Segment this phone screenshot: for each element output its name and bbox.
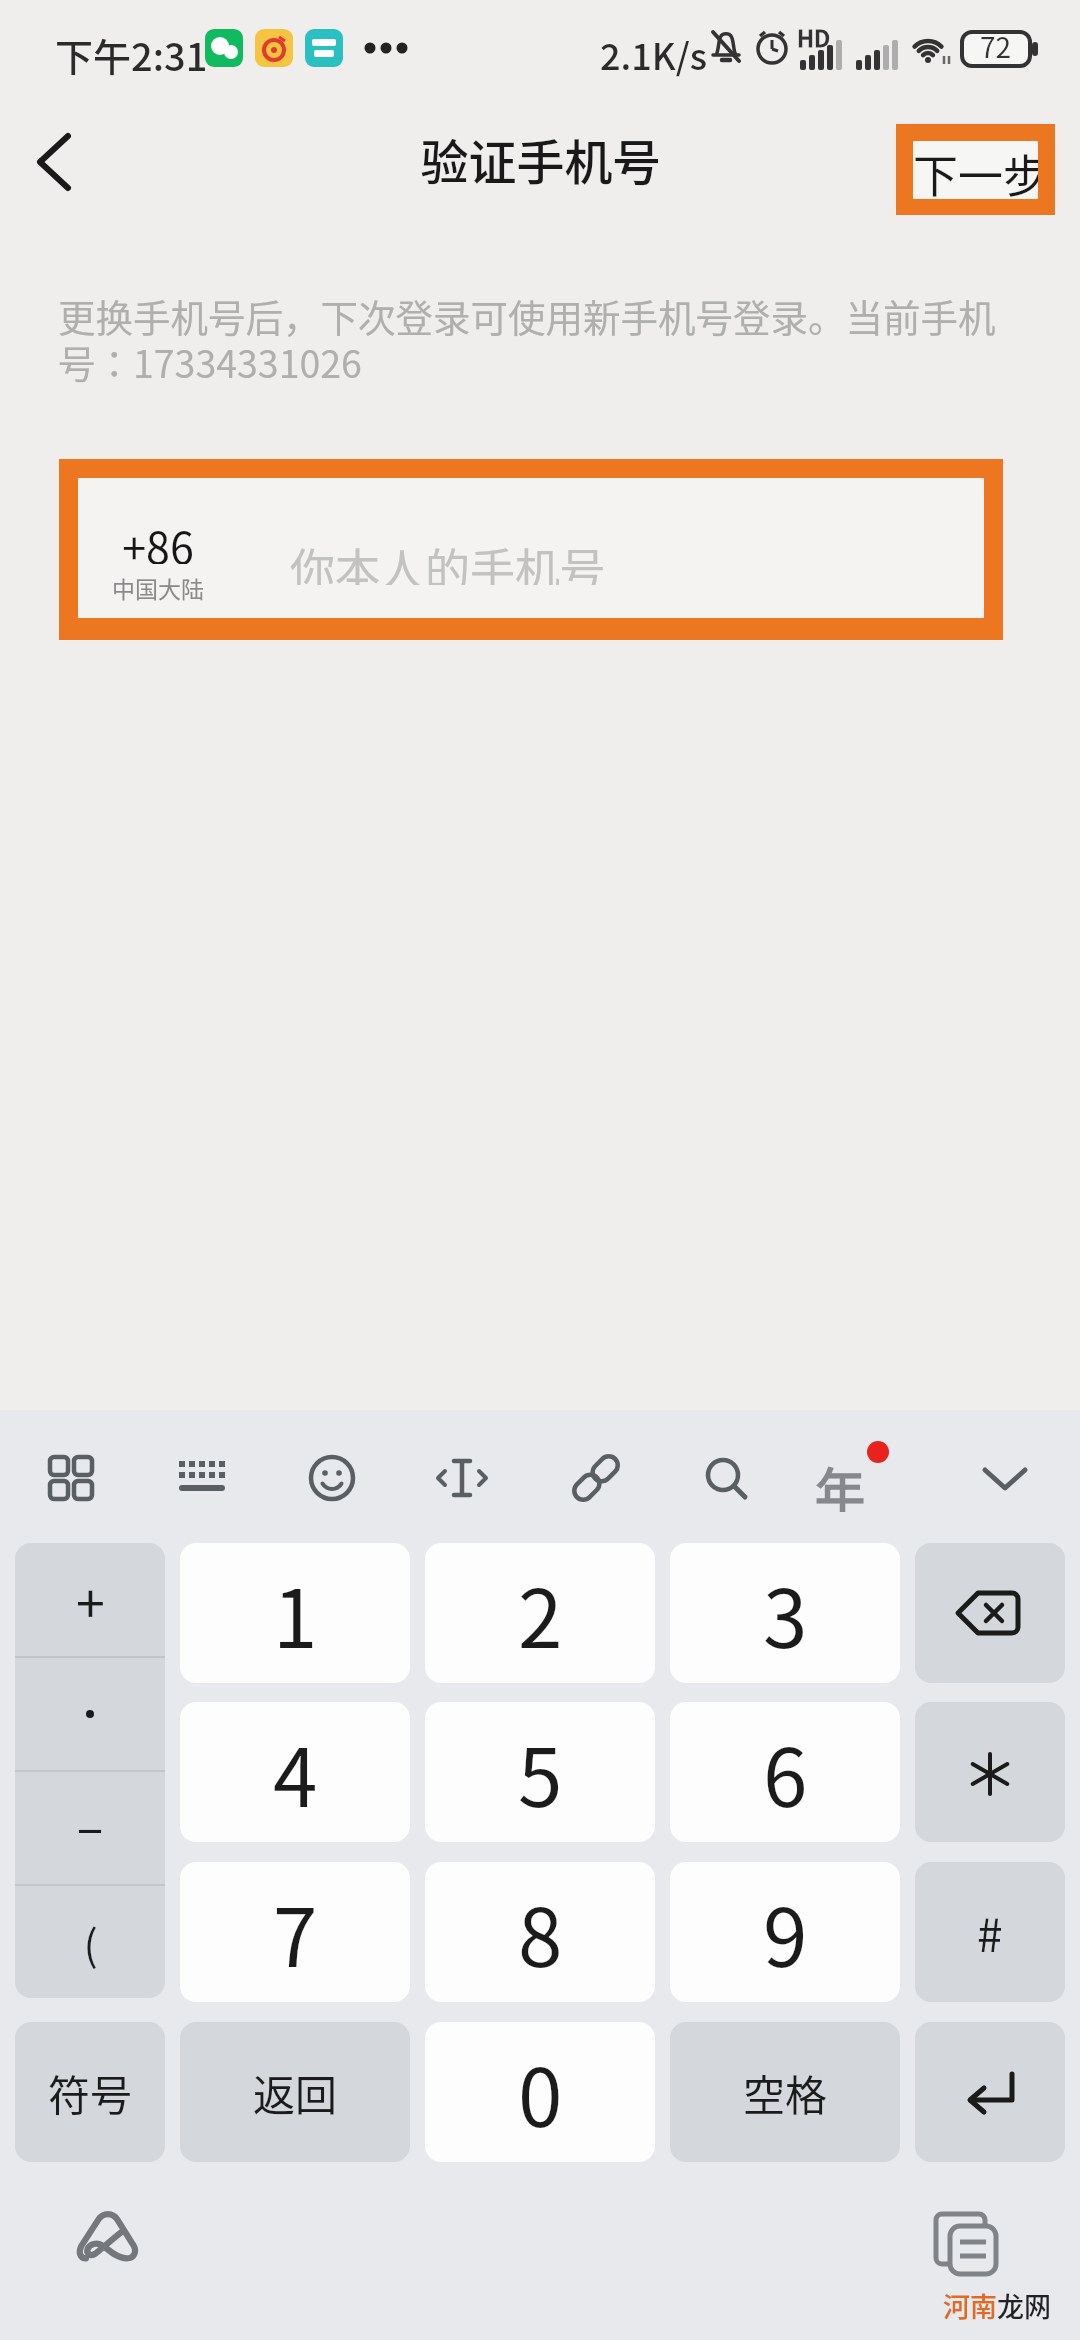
staticText: 龙网 — [997, 2286, 1051, 2325]
button[interactable]: 8 — [425, 1862, 655, 2002]
button[interactable] — [915, 2022, 1065, 2162]
button[interactable] — [20, 120, 110, 210]
button[interactable]: 9 — [670, 1862, 900, 2002]
button[interactable]: ( — [15, 1885, 165, 1998]
button[interactable]: # — [915, 1862, 1065, 2002]
staticText: 空格 — [743, 2062, 828, 2123]
button[interactable]: 4 — [180, 1702, 410, 1842]
button[interactable] — [980, 1453, 1030, 1503]
button[interactable] — [176, 1453, 226, 1503]
staticText: 7 — [273, 1874, 318, 1990]
staticText: 8 — [518, 1874, 563, 1990]
staticText: 河南 — [943, 2286, 997, 2325]
staticText: ( — [83, 1912, 98, 1973]
staticText: 你本人的手机号 — [290, 535, 606, 585]
staticText: 0 — [518, 2034, 563, 2150]
button[interactable] — [437, 1453, 487, 1503]
button[interactable] — [307, 1453, 357, 1503]
button[interactable] — [915, 1702, 1065, 1842]
staticText: # — [977, 1899, 1003, 1966]
button[interactable] — [571, 1453, 621, 1503]
staticText: 1 — [273, 1555, 318, 1671]
staticText: HD — [797, 20, 831, 53]
staticText: 下一步 — [913, 141, 1038, 199]
button[interactable]: 空格 — [670, 2022, 900, 2162]
staticText: 2 — [518, 1555, 563, 1671]
button[interactable]: 2 — [425, 1543, 655, 1683]
staticText: 更换手机号后，下次登录可使用新手机号登录。当前手机 号：17334331026 — [58, 288, 996, 389]
staticText: − — [77, 1795, 103, 1862]
button[interactable]: − — [15, 1771, 165, 1885]
button[interactable]: 返回 — [180, 2022, 410, 2162]
button[interactable]: 下一步 — [896, 124, 1055, 215]
staticText: 4 — [273, 1714, 318, 1830]
button[interactable]: 0 — [425, 2022, 655, 2162]
staticText: 5 — [518, 1714, 563, 1830]
staticText: 符号 — [48, 2062, 133, 2123]
staticText: +86 — [122, 514, 194, 564]
staticText: 返回 — [253, 2062, 338, 2123]
button[interactable]: 年 — [810, 1452, 870, 1512]
staticText: + — [76, 1563, 105, 1638]
staticText: 验证手机号 — [420, 124, 661, 194]
button[interactable]: 符号 — [15, 2022, 165, 2162]
button[interactable] — [701, 1453, 751, 1503]
staticText: 6 — [763, 1714, 808, 1830]
button[interactable]: 6 — [670, 1702, 900, 1842]
button[interactable]: 7 — [180, 1862, 410, 2002]
staticText: 下午2:31 — [55, 27, 208, 82]
staticText: 中国大陆 — [112, 571, 204, 604]
button[interactable] — [930, 2210, 1002, 2278]
button[interactable] — [46, 1453, 96, 1503]
button[interactable] — [915, 1543, 1065, 1683]
staticText: 年 — [815, 1452, 865, 1512]
staticText: 9 — [763, 1874, 808, 1990]
button[interactable]: 1 — [180, 1543, 410, 1683]
button[interactable] — [15, 1657, 165, 1771]
staticText: 2.1K/s — [600, 28, 707, 80]
button[interactable]: 5 — [425, 1702, 655, 1842]
button[interactable] — [72, 2210, 152, 2280]
staticText: 72 — [980, 26, 1012, 67]
button[interactable]: + — [15, 1543, 165, 1657]
button[interactable]: 3 — [670, 1543, 900, 1683]
button[interactable]: +86 — [78, 478, 984, 618]
staticText: 3 — [763, 1555, 808, 1671]
